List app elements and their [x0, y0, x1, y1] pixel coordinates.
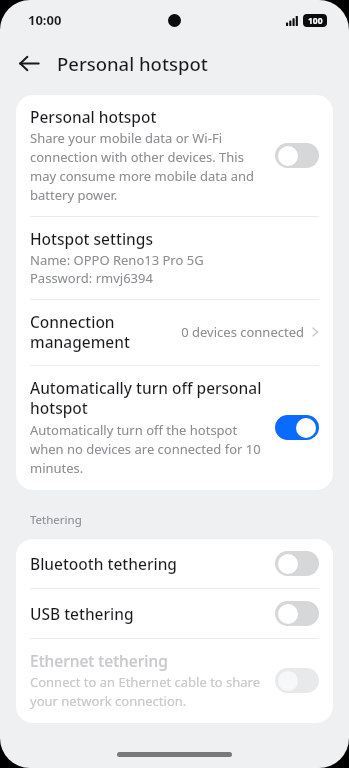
button[interactable]: Personal hotspot — [16, 95, 333, 216]
staticText: 100 — [308, 15, 323, 27]
button[interactable]: Toggle off — [275, 601, 319, 626]
button[interactable]: Toggle off — [275, 668, 319, 693]
staticText: Ethernet tethering — [30, 650, 168, 671]
button[interactable]: Toggle off — [275, 143, 319, 168]
staticText: Share your mobile data or Wi-Fi connecti… — [30, 129, 263, 204]
staticText: Name: OPPO Reno13 Pro 5G — [30, 251, 204, 269]
staticText: Password: rmvj6394 — [30, 269, 153, 287]
button[interactable]: Toggle on — [275, 415, 319, 440]
button[interactable]: Bluetooth tethering — [16, 539, 333, 588]
staticText: Automatically turn off the hotspot when … — [30, 421, 263, 477]
staticText: Connect to an Ethernet cable to share yo… — [30, 673, 263, 710]
button[interactable]: Back — [9, 43, 49, 83]
button[interactable]: USB tethering — [16, 589, 333, 638]
staticText: Tethering — [30, 512, 82, 528]
staticText: USB tethering — [30, 603, 275, 624]
staticText: Hotspot settings — [30, 228, 153, 249]
staticText: Personal hotspot — [57, 51, 208, 76]
staticText: Connection management — [30, 311, 173, 353]
button[interactable]: Automatically turn off personal hotspot — [16, 366, 333, 490]
staticText: 0 devices connected — [181, 323, 304, 341]
button[interactable]: Connection management — [16, 300, 333, 365]
staticText: Personal hotspot — [30, 106, 157, 127]
staticText: 10:00 — [28, 11, 62, 29]
button[interactable]: Toggle off — [275, 551, 319, 576]
staticText: Automatically turn off personal hotspot — [30, 377, 263, 419]
button[interactable]: Hotspot settings — [16, 217, 333, 299]
staticText: Bluetooth tethering — [30, 553, 275, 574]
